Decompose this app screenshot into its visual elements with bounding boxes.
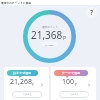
staticText: 21,368 — [31, 28, 63, 42]
button[interactable]: くわしく — [12, 91, 42, 98]
staticText: 運用ポイント — [42, 25, 58, 28]
staticText: P — [75, 83, 77, 87]
staticText: ? — [90, 8, 94, 17]
staticText: 100 — [62, 77, 75, 87]
staticText: 21,268 — [10, 77, 32, 87]
button[interactable]: くわしく — [59, 91, 89, 98]
staticText: 運用中のポイントと損益 — [1, 1, 31, 4]
staticText: おまかせ運用 — [13, 71, 32, 75]
staticText: +1,368P — [45, 43, 54, 46]
staticText: テーマで運用 — [62, 71, 81, 75]
button[interactable]: Help — [86, 7, 97, 18]
staticText: P — [32, 83, 34, 87]
staticText: くわしく — [70, 93, 79, 96]
staticText: P — [63, 35, 67, 42]
button[interactable]: おまかせ運用 — [4, 67, 49, 100]
staticText: くわしく — [23, 93, 32, 96]
button[interactable]: テーマで運用 — [51, 67, 96, 100]
